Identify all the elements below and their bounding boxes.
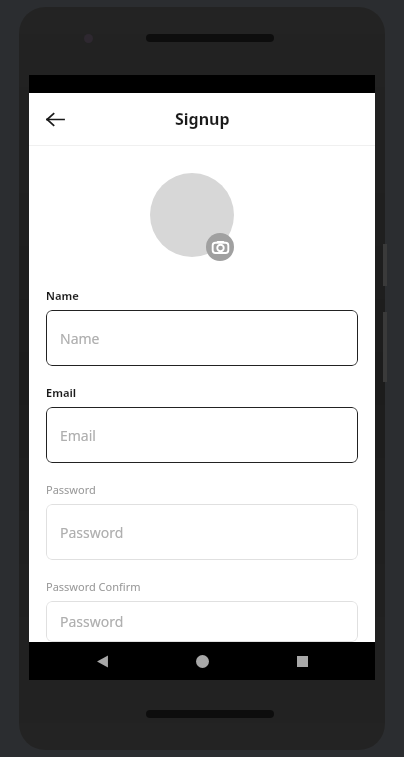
staticText: Password [60, 523, 124, 542]
button[interactable]: Name [46, 310, 358, 366]
button[interactable]: Email [46, 407, 358, 463]
button[interactable]: Home [175, 642, 229, 680]
button[interactable]: Back [37, 101, 73, 137]
button[interactable]: Change photo [206, 233, 234, 261]
staticText: Password Confirm [46, 579, 141, 594]
staticText: Password [46, 482, 96, 497]
staticText: Name [60, 329, 100, 348]
button[interactable]: Back [75, 642, 129, 680]
staticText: Signup [175, 108, 230, 130]
button[interactable]: Password [46, 601, 358, 642]
staticText: Email [60, 426, 96, 445]
staticText: Email [46, 385, 77, 400]
button[interactable]: Password [46, 504, 358, 560]
staticText: Password [60, 612, 124, 631]
button[interactable]: Recent apps [275, 642, 329, 680]
button[interactable]: Profile photo [150, 173, 234, 257]
staticText: Name [46, 288, 79, 303]
